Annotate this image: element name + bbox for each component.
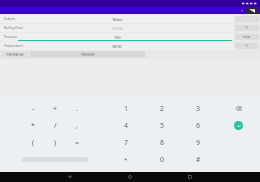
staticText: 1 — [124, 104, 129, 114]
staticText: + — [53, 104, 58, 114]
button[interactable]: TEMPERATURE — [1, 51, 29, 58]
staticText: Water — [112, 17, 123, 22]
button[interactable]: 6 — [180, 117, 216, 134]
staticText: 8 — [160, 138, 165, 148]
button[interactable]: Home — [115, 172, 145, 182]
button[interactable]: 4 — [108, 117, 144, 134]
button[interactable]: + — [44, 100, 66, 117]
button[interactable]: Dropdown — [240, 9, 244, 13]
button[interactable]: 8 — [144, 134, 180, 151]
staticText: 4 — [124, 121, 129, 131]
staticText: = — [75, 138, 80, 148]
button[interactable]: Boiling Point — [0, 24, 234, 32]
button[interactable]: PRESSURE — [30, 51, 145, 58]
staticText: Boiling Point — [4, 26, 24, 30]
button[interactable]: ( — [22, 134, 44, 151]
staticText: , — [76, 121, 78, 131]
button[interactable]: . — [66, 100, 88, 117]
staticText: 6 — [196, 121, 201, 131]
button[interactable]: °C — [235, 25, 259, 31]
staticText: ( — [32, 138, 35, 148]
staticText: / — [54, 121, 57, 131]
button[interactable]: °C — [235, 43, 259, 49]
staticText: Temperature — [4, 44, 24, 48]
button[interactable]: 5 — [144, 117, 180, 134]
button[interactable]: mbar — [235, 34, 259, 40]
button[interactable]: = — [66, 134, 88, 151]
button[interactable]: 1 — [108, 100, 144, 117]
button[interactable]: Pressure — [0, 33, 234, 41]
button[interactable]: 7 — [108, 134, 144, 151]
staticText: 2 — [160, 104, 165, 114]
button[interactable]: * — [108, 151, 144, 168]
staticText: 7 — [124, 138, 129, 148]
button[interactable]: Menu — [246, 8, 258, 14]
staticText: °C — [245, 44, 249, 48]
button[interactable]: Backspace — [216, 100, 260, 117]
button[interactable]: / — [44, 117, 66, 134]
button[interactable]: , — [66, 117, 88, 134]
staticText: 5 — [160, 121, 165, 131]
button[interactable]: Back — [55, 172, 85, 182]
button[interactable]: Enter — [234, 121, 243, 130]
staticText: - — [32, 104, 35, 114]
staticText: °C — [245, 26, 249, 30]
staticText: TEMPERATURE — [6, 53, 24, 57]
staticText: ) — [54, 138, 57, 148]
button[interactable]: 3 — [180, 100, 216, 117]
staticText: 9 — [196, 138, 201, 148]
staticText: 0 — [160, 155, 165, 165]
staticText: # — [196, 155, 201, 165]
button[interactable]: 9 — [180, 134, 216, 151]
staticText: Pressure — [4, 35, 18, 39]
staticText: 88.90 — [112, 44, 122, 49]
staticText: * — [31, 121, 35, 131]
button[interactable]: # — [180, 151, 216, 168]
staticText: Solvent — [4, 17, 16, 21]
button[interactable]: 2 — [144, 100, 180, 117]
staticText: . — [76, 104, 78, 114]
staticText: mbar — [243, 35, 251, 39]
button[interactable]: Solvent — [0, 15, 234, 23]
staticText: 100.00 — [111, 26, 123, 31]
staticText: * — [124, 156, 128, 164]
staticText: 900 — [114, 35, 121, 40]
button[interactable]: - — [22, 100, 44, 117]
button[interactable]: 0 — [144, 151, 180, 168]
staticText: PRESSURE — [81, 53, 95, 57]
button[interactable]: Temperature — [0, 42, 234, 50]
button[interactable]: * — [22, 117, 44, 134]
button[interactable]: ) — [44, 134, 66, 151]
staticText: 3 — [196, 104, 201, 114]
button[interactable]: Recents — [175, 172, 205, 182]
